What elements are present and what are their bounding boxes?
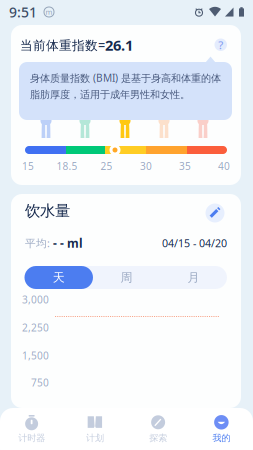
staticText: 计时器 xyxy=(18,432,45,444)
button[interactable]: 天 xyxy=(24,266,93,289)
staticText: 750 xyxy=(31,376,49,389)
staticText: 30 xyxy=(140,159,152,173)
staticText: 身体质量指数 (BMI) 是基于身高和体重的体脂肪厚度，适用于成年男性和女性。 xyxy=(30,71,221,101)
button[interactable]: 计划 xyxy=(63,408,126,450)
staticText: 15 xyxy=(22,159,34,173)
staticText: m xyxy=(45,7,52,17)
staticText: 当前体重指数= xyxy=(20,36,105,54)
staticText: 40 xyxy=(218,159,230,173)
staticText: 计划 xyxy=(86,432,104,444)
staticText: 25 xyxy=(100,159,112,173)
staticText: 平均: xyxy=(25,236,53,250)
staticText: 探索 xyxy=(149,432,167,444)
staticText: 3,000 xyxy=(22,293,49,306)
button[interactable]: 帮助 xyxy=(214,38,227,51)
staticText: 9:51 xyxy=(9,2,37,22)
button[interactable]: 我的 xyxy=(190,408,253,450)
staticText: 我的 xyxy=(212,432,230,444)
button[interactable]: 探索 xyxy=(126,408,190,450)
staticText: 天 xyxy=(53,270,65,285)
staticText: 18.5 xyxy=(56,159,77,173)
staticText: 1,500 xyxy=(22,349,49,362)
staticText: 04/15 - 04/20 xyxy=(162,236,227,250)
staticText: 周 xyxy=(120,270,132,285)
button[interactable]: 周 xyxy=(93,266,160,289)
staticText: 月 xyxy=(187,270,199,285)
staticText: 饮水量 xyxy=(25,201,70,221)
staticText: 35 xyxy=(179,159,191,173)
staticText: 2,250 xyxy=(22,321,49,334)
button[interactable]: 月 xyxy=(160,266,227,289)
staticText: ? xyxy=(218,37,223,52)
button[interactable]: 编辑 xyxy=(205,203,224,222)
button[interactable]: 计时器 xyxy=(0,408,63,450)
staticText: - - ml xyxy=(53,235,83,251)
staticText: 26.1 xyxy=(105,35,133,55)
